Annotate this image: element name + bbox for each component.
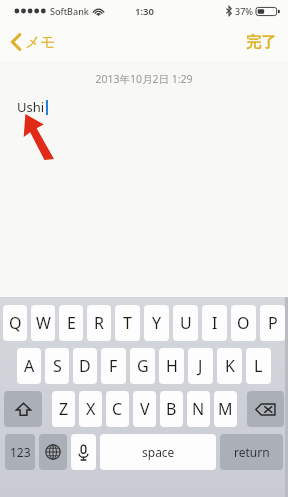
staticText: メモ — [25, 33, 56, 52]
button[interactable]: M — [214, 391, 237, 427]
staticText: Q — [9, 312, 22, 334]
button[interactable]: T — [115, 305, 140, 341]
button[interactable]: F — [101, 348, 126, 384]
staticText: Z — [59, 398, 69, 420]
button[interactable]: C — [106, 391, 129, 427]
button[interactable]: U — [173, 305, 198, 341]
button[interactable]: メモ — [0, 22, 66, 62]
button[interactable]: 完了 — [234, 22, 288, 62]
button[interactable]: Backspace — [247, 391, 284, 427]
button[interactable]: space — [100, 434, 216, 470]
staticText: V — [140, 398, 150, 420]
staticText: 1:30 — [135, 5, 154, 18]
staticText: space — [142, 444, 175, 460]
staticText: 37% — [235, 5, 253, 17]
staticText: 完了 — [246, 33, 276, 52]
staticText: Y — [152, 312, 162, 334]
button[interactable]: R — [87, 305, 111, 341]
button[interactable]: Dictation — [71, 434, 96, 470]
staticText: R — [94, 312, 104, 334]
button[interactable]: N — [187, 391, 210, 427]
button[interactable]: S — [45, 348, 69, 384]
staticText: Ushi — [17, 98, 45, 116]
staticText: D — [79, 355, 91, 377]
button[interactable]: G — [130, 348, 155, 384]
staticText: L — [254, 355, 263, 377]
button[interactable]: I — [202, 305, 227, 341]
staticText: X — [86, 398, 96, 420]
button[interactable]: D — [73, 348, 97, 384]
staticText: H — [166, 355, 178, 377]
button[interactable]: return — [220, 434, 283, 470]
staticText: E — [67, 312, 76, 334]
button[interactable]: O — [231, 305, 256, 341]
staticText: 2013年10月2日 1:29 — [0, 72, 288, 86]
button[interactable]: B — [160, 391, 183, 427]
staticText: SoftBank — [50, 5, 89, 17]
button[interactable]: Z — [52, 391, 75, 427]
staticText: O — [237, 312, 250, 334]
button[interactable]: 2013年10月2日 1:29 — [0, 62, 288, 297]
staticText: B — [166, 398, 177, 420]
staticText: P — [268, 312, 278, 334]
staticText: return — [234, 444, 270, 460]
staticText: K — [225, 355, 235, 377]
button[interactable]: 123 — [5, 434, 35, 470]
button[interactable]: L — [246, 348, 271, 384]
button[interactable]: H — [159, 348, 184, 384]
button[interactable]: P — [260, 305, 285, 341]
staticText: W — [36, 312, 51, 334]
button[interactable]: Change keyboard language — [39, 434, 67, 470]
staticText: N — [192, 398, 205, 420]
button[interactable]: J — [188, 348, 213, 384]
staticText: S — [53, 355, 62, 377]
button[interactable]: W — [31, 305, 55, 341]
staticText: J — [198, 355, 203, 377]
button[interactable]: Y — [144, 305, 169, 341]
staticText: 123 — [10, 444, 31, 460]
staticText: C — [112, 398, 123, 420]
staticText: I — [212, 312, 218, 334]
button[interactable]: E — [59, 305, 83, 341]
staticText: A — [24, 355, 35, 377]
button[interactable]: X — [79, 391, 102, 427]
button[interactable]: Q — [3, 305, 27, 341]
staticText: M — [218, 398, 233, 420]
button[interactable]: K — [217, 348, 242, 384]
button[interactable]: A — [17, 348, 41, 384]
staticText: T — [123, 312, 132, 334]
staticText: U — [180, 312, 192, 334]
button[interactable]: Shift — [4, 391, 42, 427]
staticText: F — [109, 355, 118, 377]
button[interactable]: V — [133, 391, 156, 427]
staticText: G — [137, 355, 149, 377]
